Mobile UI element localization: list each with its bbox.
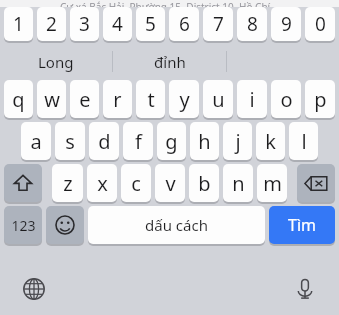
staticText: g	[165, 128, 178, 155]
staticText: e	[79, 86, 91, 113]
staticText: b	[198, 170, 211, 197]
button[interactable]: Dictation	[285, 269, 325, 309]
button[interactable]: n	[223, 164, 253, 204]
staticText: n	[232, 170, 245, 197]
button[interactable]: dấu cách	[88, 206, 265, 246]
button[interactable]: e	[70, 80, 99, 120]
staticText: 7	[213, 11, 224, 37]
button[interactable]: 1	[4, 7, 33, 43]
button[interactable]: 0	[305, 7, 335, 43]
button[interactable]: s	[55, 122, 85, 162]
button[interactable]: i	[237, 80, 267, 120]
button[interactable]: d	[89, 122, 119, 162]
staticText: 6	[179, 11, 190, 37]
staticText: 123	[11, 216, 36, 235]
staticText: Tìm	[288, 214, 316, 236]
staticText: x	[97, 170, 108, 197]
button[interactable]: t	[136, 80, 165, 120]
staticText: s	[65, 128, 75, 155]
staticText: o	[280, 86, 293, 113]
button[interactable]: 4	[103, 7, 132, 43]
button[interactable]: 3	[70, 7, 99, 43]
button[interactable]: Long	[0, 43, 112, 80]
button[interactable]: a	[21, 122, 51, 162]
button[interactable]: 2	[37, 7, 66, 43]
staticText: r	[113, 86, 122, 113]
staticText: q	[12, 86, 25, 113]
button[interactable]: 123	[4, 206, 42, 246]
staticText: 5	[145, 11, 156, 37]
button[interactable]: 9	[271, 7, 301, 43]
button[interactable]: Emoji	[46, 206, 84, 246]
staticText: m	[263, 170, 282, 197]
staticText: z	[63, 170, 73, 197]
staticText: u	[212, 86, 225, 113]
button[interactable]: p	[305, 80, 335, 120]
button[interactable]: b	[189, 164, 219, 204]
staticText: 4	[112, 11, 123, 37]
staticText: v	[165, 170, 176, 197]
button[interactable]: k	[256, 122, 285, 162]
staticText: Cư xá Bắc Hải, Phường 15, District 10, H…	[60, 0, 279, 7]
button[interactable]: Shift	[4, 164, 42, 204]
staticText: 2	[46, 11, 57, 37]
staticText: i	[249, 86, 255, 113]
button[interactable]: f	[123, 122, 153, 162]
staticText: k	[265, 128, 276, 155]
staticText: h	[198, 128, 211, 155]
button[interactable]: Backspace	[297, 164, 335, 204]
button[interactable]: u	[203, 80, 233, 120]
button[interactable]: z	[52, 164, 83, 204]
staticText: dấu cách	[145, 215, 208, 235]
staticText: j	[235, 128, 241, 155]
button[interactable]: x	[87, 164, 117, 204]
staticText: a	[30, 128, 42, 155]
button[interactable]: 6	[169, 7, 199, 43]
staticText: 1	[13, 11, 24, 37]
button[interactable]: r	[103, 80, 132, 120]
staticText: t	[147, 86, 155, 113]
button[interactable]: Tìm	[269, 206, 335, 246]
button[interactable]: 7	[203, 7, 233, 43]
button[interactable]: o	[271, 80, 301, 120]
button[interactable]: c	[121, 164, 151, 204]
button[interactable]: 5	[136, 7, 165, 43]
staticText: l	[301, 128, 307, 155]
button[interactable]: j	[223, 122, 252, 162]
button[interactable]: g	[157, 122, 186, 162]
staticText: 9	[281, 11, 292, 37]
button[interactable]: q	[4, 80, 33, 120]
staticText: p	[314, 86, 327, 113]
staticText: d	[98, 128, 111, 155]
staticText: Long	[38, 52, 74, 72]
button[interactable]: y	[169, 80, 199, 120]
staticText: 0	[315, 11, 326, 37]
button[interactable]: Change keyboard language	[14, 269, 54, 309]
staticText: 8	[247, 11, 258, 37]
staticText: y	[179, 86, 190, 113]
staticText: f	[135, 128, 142, 155]
button[interactable]: 8	[237, 7, 267, 43]
button[interactable]: h	[190, 122, 219, 162]
button[interactable]: l	[289, 122, 318, 162]
button[interactable]: đỉnh	[113, 43, 226, 80]
staticText: 3	[79, 11, 90, 37]
button[interactable]: m	[257, 164, 287, 204]
staticText: c	[131, 170, 141, 197]
staticText: w	[44, 86, 60, 113]
button[interactable]: w	[37, 80, 66, 120]
button[interactable]: v	[155, 164, 185, 204]
staticText: đỉnh	[154, 52, 186, 72]
